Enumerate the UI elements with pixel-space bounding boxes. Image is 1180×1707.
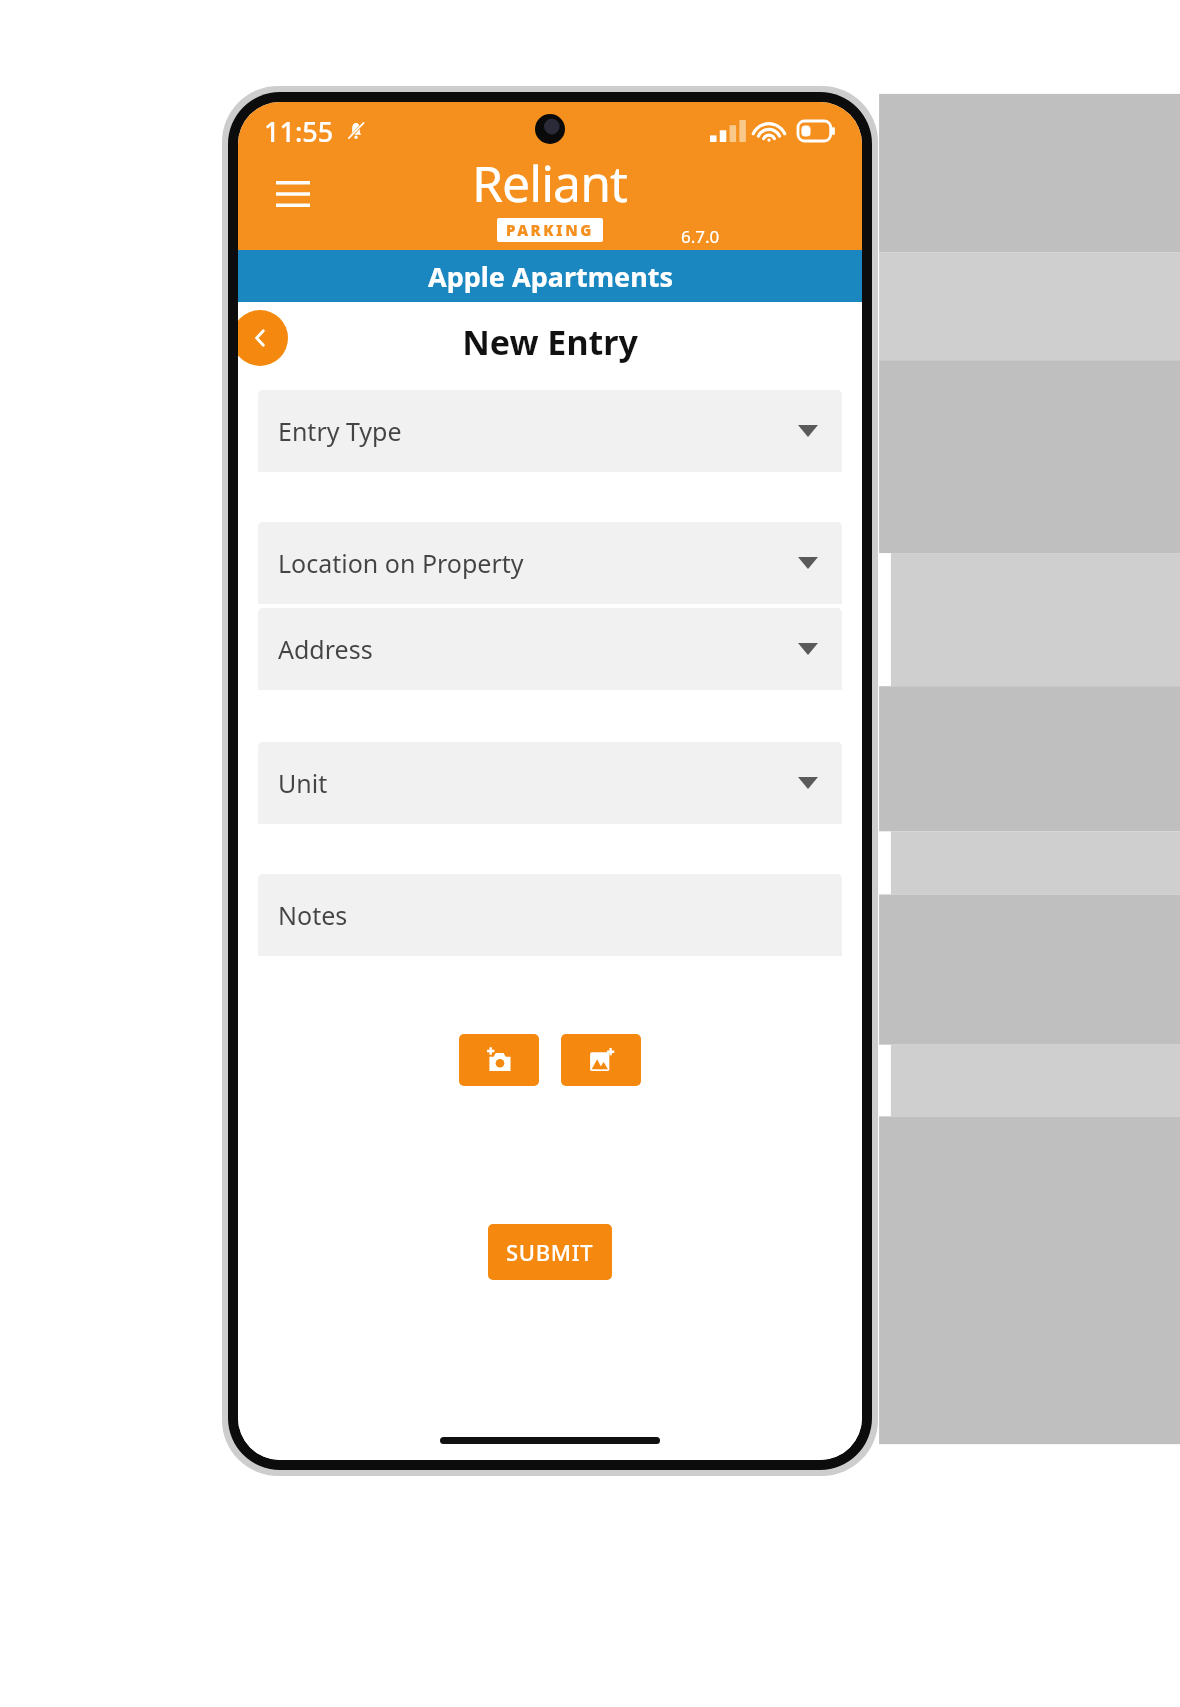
button[interactable]: Address — [258, 608, 842, 690]
button[interactable]: Add image from gallery — [561, 1034, 641, 1086]
button[interactable]: Take photo — [459, 1034, 539, 1086]
staticText: SUBMIT — [506, 1237, 594, 1267]
staticText: New Entry — [462, 319, 638, 365]
staticText: Reliant — [472, 149, 628, 217]
staticText: Location on Property — [278, 546, 524, 580]
staticText: 6.7.0 — [681, 225, 720, 248]
button[interactable]: Open navigation menu — [268, 169, 318, 219]
staticText: Apple Apartments — [428, 258, 673, 295]
staticText: Notes — [278, 898, 348, 932]
button[interactable]: SUBMIT — [488, 1224, 612, 1280]
staticText: 11:55 — [264, 113, 334, 150]
staticText: PARKING — [506, 220, 594, 240]
staticText: Entry Type — [278, 414, 402, 448]
button[interactable]: Apple Apartments — [238, 250, 862, 302]
button[interactable]: Unit — [258, 742, 842, 824]
staticText: Unit — [278, 766, 328, 800]
button[interactable]: Location on Property — [258, 522, 842, 604]
button[interactable]: Back — [238, 310, 288, 366]
button[interactable]: Notes — [258, 874, 842, 956]
staticText: Address — [278, 632, 373, 666]
button[interactable]: Entry Type — [258, 390, 842, 472]
